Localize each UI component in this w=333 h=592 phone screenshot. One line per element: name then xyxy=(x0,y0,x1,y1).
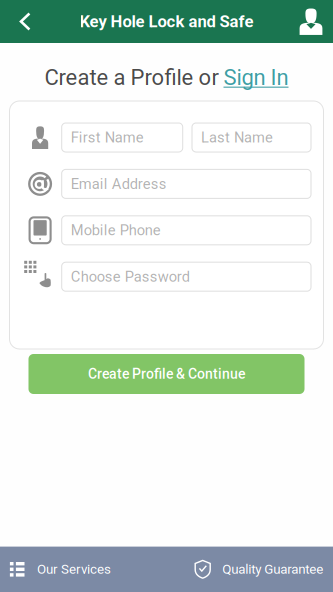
staticText: Our Services xyxy=(37,561,111,577)
staticText: Last Name xyxy=(201,129,273,146)
staticText: Sign In xyxy=(223,65,288,90)
staticText: Create Profile & Continue xyxy=(88,366,245,382)
staticText: Mobile Phone xyxy=(71,222,161,239)
button[interactable]: Our Services xyxy=(0,547,185,592)
staticText: Email Address xyxy=(71,175,167,192)
button[interactable]: Sign In xyxy=(223,65,288,90)
button[interactable]: Create Profile & Continue xyxy=(28,354,304,394)
staticText: Quality Guarantee xyxy=(222,561,323,577)
button[interactable]: Back xyxy=(0,0,50,43)
button[interactable]: Quality Guarantee xyxy=(185,547,333,592)
button[interactable]: Profile xyxy=(289,0,333,43)
staticText: Choose Password xyxy=(71,268,190,285)
staticText: Create a Profile or xyxy=(44,65,223,90)
staticText: Key Hole Lock and Safe xyxy=(79,12,253,31)
staticText: First Name xyxy=(71,129,144,146)
